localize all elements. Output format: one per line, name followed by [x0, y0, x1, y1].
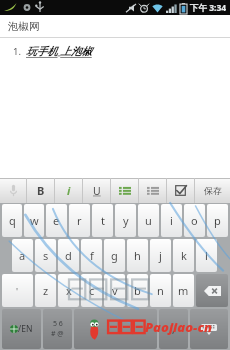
button[interactable]: j	[150, 239, 171, 272]
button[interactable]: n	[150, 274, 171, 307]
staticText: s	[43, 248, 49, 263]
staticText: 玩手机 上泡椒	[26, 44, 92, 58]
staticText: 下午 3:34	[190, 2, 227, 14]
button[interactable]: i	[161, 204, 182, 237]
button[interactable]: Underline	[83, 178, 110, 203]
button[interactable]: Bulleted list	[139, 178, 166, 203]
staticText: w	[30, 213, 39, 228]
button[interactable]: u	[138, 204, 159, 237]
button[interactable]: Backspace	[196, 274, 228, 307]
button[interactable]: r	[69, 204, 90, 237]
staticText: Paojiao-cn	[145, 318, 213, 336]
staticText: p	[214, 213, 221, 228]
button[interactable]: o	[184, 204, 205, 237]
staticText: 1.	[13, 45, 21, 58]
button[interactable]: Voice input	[0, 178, 26, 203]
staticText: q	[9, 213, 16, 228]
button[interactable]: w	[24, 204, 44, 237]
staticText: # @	[51, 329, 64, 339]
staticText: y	[123, 213, 129, 228]
button[interactable]: s	[35, 239, 56, 272]
button[interactable]: g	[104, 239, 125, 272]
staticText: c	[89, 283, 95, 298]
staticText: u	[145, 213, 152, 228]
staticText: o	[191, 213, 198, 228]
staticText: r	[77, 213, 82, 228]
button[interactable]: p	[207, 204, 228, 237]
staticText: f	[90, 248, 94, 263]
button[interactable]: v	[104, 274, 125, 307]
button[interactable]: x	[58, 274, 79, 307]
button[interactable]: t	[92, 204, 113, 237]
staticText: h	[134, 248, 141, 263]
button[interactable]: m	[173, 274, 194, 307]
button[interactable]: Checklist	[167, 178, 194, 203]
button[interactable]: Comma	[159, 309, 188, 349]
staticText: i	[67, 183, 71, 198]
staticText: U	[93, 184, 101, 198]
button[interactable]: a	[12, 239, 33, 272]
staticText: n	[157, 283, 164, 298]
staticText: l	[205, 248, 208, 263]
staticText: e	[53, 213, 60, 228]
staticText: m	[178, 283, 189, 298]
button[interactable]: l	[196, 239, 217, 272]
staticText: /EN	[18, 323, 33, 335]
staticText: d	[65, 248, 72, 263]
button[interactable]: Italic	[55, 178, 82, 203]
button[interactable]: '	[2, 274, 33, 307]
button[interactable]: Bold	[27, 178, 54, 203]
staticText: '	[16, 285, 19, 297]
staticText: i	[170, 213, 173, 228]
button[interactable]: Switch input language	[2, 309, 41, 349]
button[interactable]: Hide keyboard	[190, 309, 228, 349]
staticText: ,	[172, 322, 175, 336]
button[interactable]: h	[127, 239, 148, 272]
staticText: j	[159, 248, 162, 263]
staticText: g	[111, 248, 118, 263]
button[interactable]: Symbols	[43, 309, 72, 349]
button[interactable]: k	[173, 239, 194, 272]
staticText: 泡椒网	[8, 20, 40, 33]
button[interactable]: q	[2, 204, 22, 237]
staticText: a	[19, 248, 26, 263]
button[interactable]: b	[127, 274, 148, 307]
staticText: v	[112, 283, 118, 298]
staticText: t	[101, 213, 105, 228]
button[interactable]: f	[81, 239, 102, 272]
button[interactable]: c	[81, 274, 102, 307]
button[interactable]: Numbered list	[111, 178, 138, 203]
staticText: k	[181, 248, 187, 263]
staticText: 保存	[204, 185, 222, 196]
button[interactable]: d	[58, 239, 79, 272]
staticText: z	[43, 283, 49, 298]
staticText: b	[134, 283, 141, 298]
staticText: 5 6	[53, 319, 63, 329]
staticText: x	[66, 283, 72, 298]
button[interactable]: y	[115, 204, 136, 237]
button[interactable]: 保存	[195, 178, 230, 203]
button[interactable]: z	[35, 274, 56, 307]
staticText: B	[37, 183, 45, 198]
button[interactable]: e	[46, 204, 67, 237]
button[interactable]: Space	[74, 309, 157, 349]
